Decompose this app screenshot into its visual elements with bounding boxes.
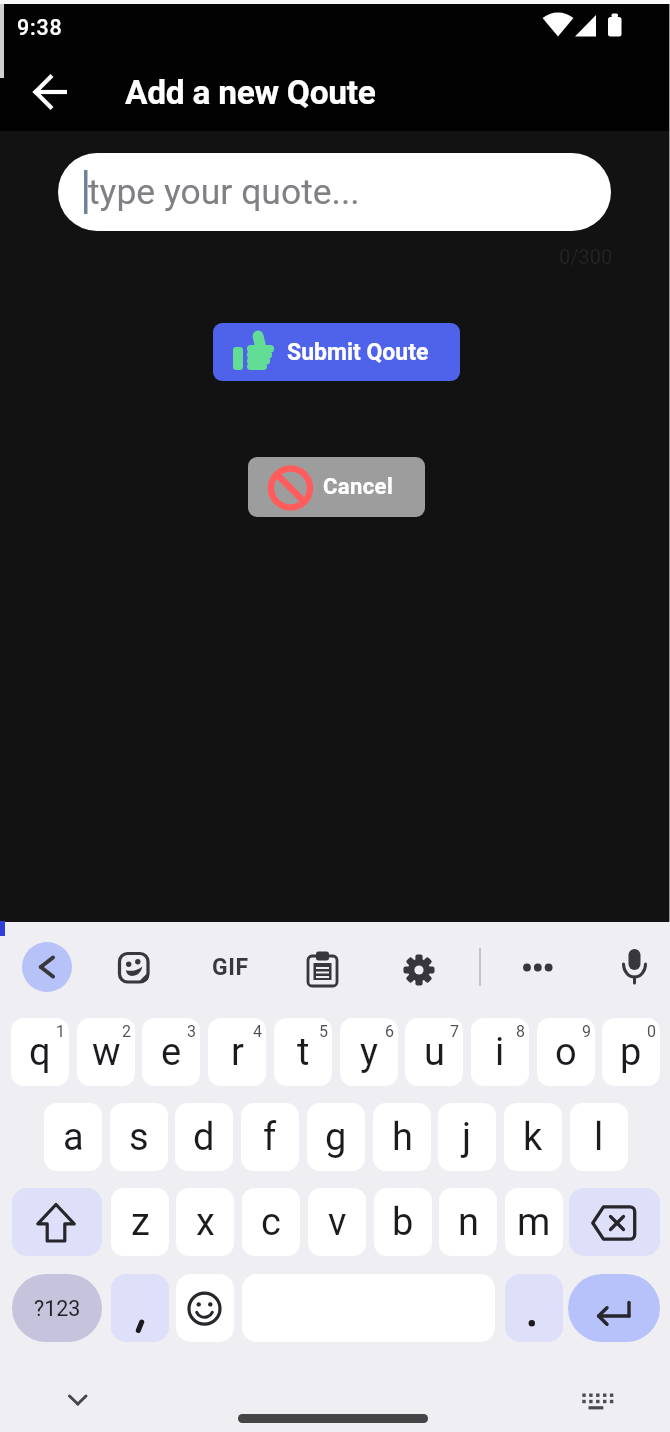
button[interactable]: ?123 — [12, 1274, 102, 1342]
staticText: e — [161, 1030, 182, 1075]
staticText: q — [29, 1030, 51, 1075]
button[interactable]: p — [602, 1018, 660, 1086]
button[interactable]: v — [308, 1188, 366, 1256]
button[interactable]: Submit Qoute — [213, 323, 460, 381]
button[interactable]: m — [505, 1188, 563, 1256]
button[interactable]: h — [373, 1103, 431, 1171]
button[interactable] — [569, 1188, 660, 1256]
staticText: 9 — [582, 1022, 591, 1041]
button[interactable]: s — [110, 1103, 168, 1171]
staticText: x — [196, 1200, 215, 1245]
staticText: 1 — [56, 1022, 65, 1041]
staticText: a — [63, 1115, 84, 1160]
staticText: i — [495, 1030, 505, 1075]
staticText: Cancel — [323, 474, 394, 500]
staticText: l — [594, 1115, 604, 1160]
staticText: ?123 — [34, 1296, 81, 1321]
staticText: GIF — [212, 954, 249, 981]
button[interactable] — [306, 950, 340, 988]
button[interactable]: a — [44, 1103, 102, 1171]
button[interactable] — [111, 1274, 169, 1342]
button[interactable]: l — [570, 1103, 628, 1171]
staticText: 0/300 — [559, 245, 613, 268]
button[interactable]: u — [405, 1018, 463, 1086]
button[interactable] — [58, 1384, 98, 1414]
button[interactable] — [505, 1274, 563, 1342]
staticText: t — [297, 1030, 310, 1075]
staticText: 4 — [253, 1022, 262, 1041]
button[interactable]: x — [176, 1188, 234, 1256]
staticText: r — [231, 1030, 244, 1075]
staticText: b — [392, 1200, 414, 1245]
staticText: w — [92, 1030, 121, 1075]
button[interactable]: type your quote... — [58, 153, 611, 231]
staticText: s — [129, 1115, 149, 1160]
button[interactable] — [12, 1188, 102, 1256]
staticText: g — [325, 1115, 347, 1160]
button[interactable]: o — [537, 1018, 595, 1086]
button[interactable] — [22, 942, 72, 992]
staticText: y — [360, 1030, 378, 1075]
button[interactable] — [116, 950, 152, 986]
button[interactable] — [28, 69, 74, 115]
staticText: f — [263, 1115, 277, 1160]
staticText: c — [261, 1200, 281, 1245]
button[interactable]: w — [77, 1018, 135, 1086]
staticText: o — [555, 1030, 577, 1075]
staticText: p — [620, 1030, 642, 1075]
button[interactable] — [176, 1274, 234, 1342]
button[interactable] — [618, 946, 652, 988]
staticText: m — [517, 1200, 551, 1245]
button[interactable]: y — [340, 1018, 398, 1086]
button[interactable]: i — [471, 1018, 529, 1086]
button[interactable]: q — [11, 1018, 69, 1086]
staticText: d — [193, 1115, 215, 1160]
button[interactable]: g — [307, 1103, 365, 1171]
staticText: 7 — [450, 1022, 459, 1041]
button[interactable]: GIF — [204, 951, 256, 983]
staticText: 5 — [319, 1022, 328, 1041]
staticText: type your quote... — [88, 171, 360, 213]
button[interactable]: c — [242, 1188, 300, 1256]
staticText: Add a new Qoute — [125, 73, 376, 112]
staticText: h — [392, 1115, 413, 1160]
staticText: j — [462, 1115, 472, 1160]
staticText: 0 — [647, 1022, 656, 1041]
staticText: u — [424, 1030, 445, 1075]
staticText: 8 — [516, 1022, 525, 1041]
button[interactable]: k — [504, 1103, 562, 1171]
button[interactable]: Cancel — [248, 457, 425, 517]
button[interactable]: e — [142, 1018, 200, 1086]
button[interactable]: f — [241, 1103, 299, 1171]
staticText: n — [458, 1200, 479, 1245]
staticText: 2 — [122, 1022, 131, 1041]
staticText: z — [131, 1200, 150, 1245]
button[interactable]: j — [438, 1103, 496, 1171]
staticText: k — [523, 1115, 543, 1160]
staticText: 6 — [385, 1022, 394, 1041]
button[interactable]: n — [439, 1188, 497, 1256]
button[interactable] — [402, 953, 436, 987]
button[interactable]: t — [274, 1018, 332, 1086]
button[interactable]: z — [111, 1188, 169, 1256]
button[interactable]: b — [374, 1188, 432, 1256]
staticText: 3 — [187, 1022, 196, 1041]
staticText: v — [328, 1200, 347, 1245]
button[interactable] — [578, 1388, 614, 1416]
staticText: 9:38 — [17, 15, 63, 40]
button[interactable]: r — [208, 1018, 266, 1086]
button[interactable] — [518, 957, 558, 977]
button[interactable]: d — [175, 1103, 233, 1171]
button[interactable] — [568, 1274, 660, 1342]
staticText: Submit Qoute — [287, 339, 429, 366]
